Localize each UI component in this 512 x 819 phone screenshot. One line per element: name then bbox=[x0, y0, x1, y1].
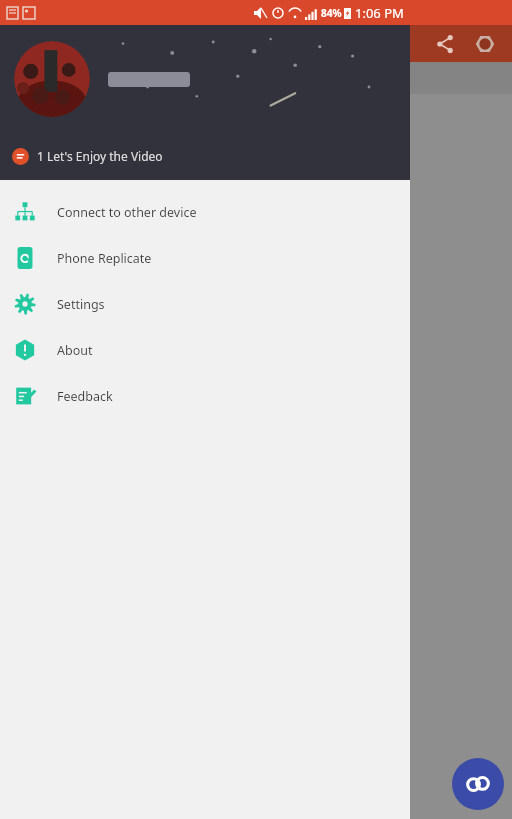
button[interactable]: Gem Miner bbox=[0, 444, 512, 544]
staticText: Settings bbox=[57, 296, 105, 313]
button[interactable]: Select bbox=[0, 104, 512, 128]
staticText: 1:06 PM bbox=[355, 4, 404, 22]
button[interactable]: Share bbox=[428, 27, 462, 61]
button[interactable]: Phone Replicate bbox=[0, 235, 410, 281]
button[interactable]: Blek bbox=[0, 244, 512, 344]
button[interactable]: Connect bbox=[452, 758, 504, 810]
staticText: Feedback bbox=[57, 388, 113, 405]
staticText: 1 Let's Enjoy the Video bbox=[37, 148, 163, 164]
button[interactable]: Settings bbox=[0, 281, 410, 327]
staticText: Connect to other device bbox=[57, 204, 197, 221]
button[interactable]: Opera Mini bbox=[0, 744, 512, 819]
button[interactable]: File bbox=[0, 62, 512, 94]
button[interactable]: Feedback bbox=[0, 373, 410, 419]
button[interactable]: Help bbox=[468, 27, 502, 61]
button[interactable] bbox=[14, 41, 90, 117]
button[interactable]: About bbox=[0, 327, 410, 373]
button[interactable]: Hangouts bbox=[0, 644, 512, 744]
button[interactable]: Connect to other device bbox=[0, 189, 410, 235]
button[interactable]: 1 Let's Enjoy the Video bbox=[0, 136, 410, 176]
staticText: Phone Replicate bbox=[57, 250, 152, 267]
button[interactable]: Select bbox=[0, 216, 512, 240]
button[interactable]: oogle Play Music bbox=[0, 544, 512, 644]
staticText: About bbox=[57, 342, 93, 359]
staticText: 84% bbox=[321, 6, 342, 20]
button[interactable]: Dropbox bbox=[0, 344, 512, 444]
